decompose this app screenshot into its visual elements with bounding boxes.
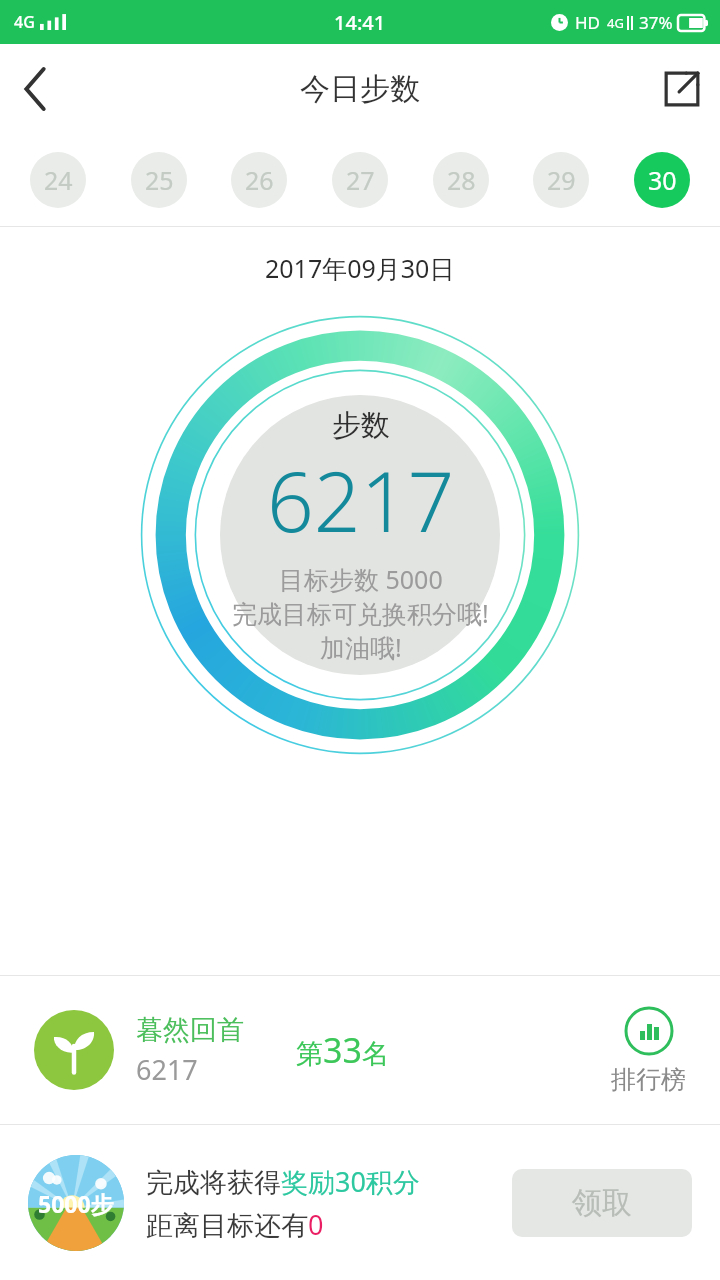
staticText: 排行榜 [611,1064,686,1095]
staticText: 26 [245,163,274,197]
button[interactable]: 领取 [512,1169,692,1237]
button[interactable]: 排行榜 [611,1006,686,1095]
staticText: HD [575,11,601,34]
staticText: 步数 [332,407,390,444]
staticText: 完成将获得奖励30积分 [146,1163,420,1200]
staticText: 5000步 [38,1188,114,1219]
button[interactable]: Back [0,53,72,125]
staticText: 第33名 [296,1027,389,1073]
staticText: 28 [447,163,476,197]
staticText: 37% [639,11,673,34]
button[interactable]: 24 [30,152,86,208]
staticText: 暮然回首 [136,1013,244,1047]
button[interactable]: 26 [231,152,287,208]
staticText: 领取 [572,1184,632,1222]
staticText: 4G [607,14,624,32]
staticText: 距离目标还有0 [146,1206,324,1243]
staticText: 30 [648,163,677,197]
staticText: 14:41 [334,9,386,36]
staticText: 2017年09月30日 [265,251,455,285]
staticText: 24 [44,163,73,197]
button[interactable]: 28 [433,152,489,208]
staticText: 25 [145,163,174,197]
button[interactable]: 29 [533,152,589,208]
staticText: 6217 [267,444,455,556]
button[interactable]: Share [644,51,720,127]
staticText: 加油哦! [320,630,402,664]
staticText: 今日步数 [300,70,420,108]
staticText: 目标步数 5000 [279,562,443,596]
staticText: 27 [346,163,375,197]
staticText: 6217 [136,1051,198,1088]
button[interactable]: 暮然回首 [0,976,720,1124]
staticText: 29 [547,163,576,197]
button[interactable]: 30 [634,152,690,208]
button[interactable]: 27 [332,152,388,208]
staticText: 4G [14,11,35,33]
button[interactable]: 25 [131,152,187,208]
staticText: 完成目标可兑换积分哦! [232,596,489,630]
